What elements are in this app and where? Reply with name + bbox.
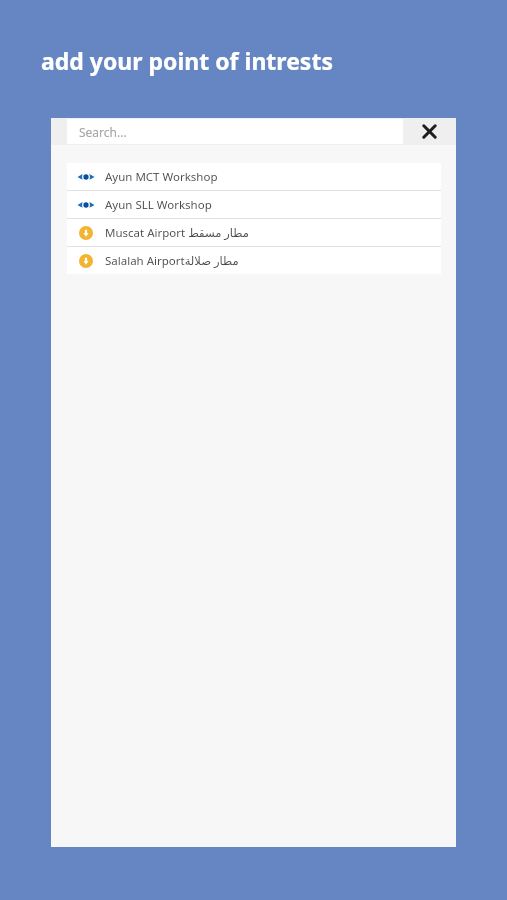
staticText: add your point of intrests [41, 45, 333, 76]
button[interactable]: Search... [67, 119, 403, 144]
button[interactable]: Muscat Airport مطار مسقط [67, 219, 441, 246]
staticText: Ayun SLL Workshop [105, 197, 212, 213]
button[interactable]: Close [403, 118, 456, 145]
button[interactable]: Ayun MCT Workshop [67, 163, 441, 190]
button[interactable]: Salalah Airportمطار صلالة [67, 247, 441, 274]
staticText: Ayun MCT Workshop [105, 169, 218, 185]
staticText: Salalah Airportمطار صلالة [105, 253, 239, 269]
button[interactable]: Ayun SLL Workshop [67, 191, 441, 218]
staticText: Search... [79, 124, 127, 140]
staticText: Muscat Airport مطار مسقط [105, 225, 249, 241]
